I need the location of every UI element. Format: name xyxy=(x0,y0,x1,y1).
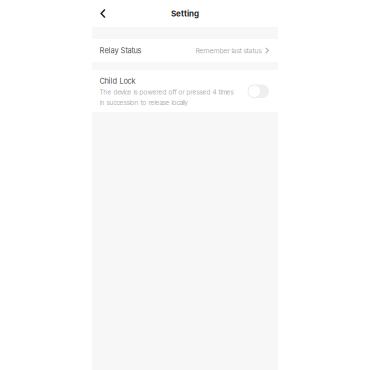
button[interactable]: Back xyxy=(92,0,114,27)
staticText: The device is powered off or pressed 4 t… xyxy=(99,88,233,96)
staticText: Remember last status xyxy=(195,46,261,55)
button[interactable]: Relay Status xyxy=(92,39,278,62)
staticText: in succession to release locally xyxy=(99,99,187,107)
staticText: Setting xyxy=(171,9,199,18)
button[interactable]: Child Lock xyxy=(247,76,269,98)
staticText: Child Lock xyxy=(99,76,135,85)
staticText: Relay Status xyxy=(99,46,141,55)
